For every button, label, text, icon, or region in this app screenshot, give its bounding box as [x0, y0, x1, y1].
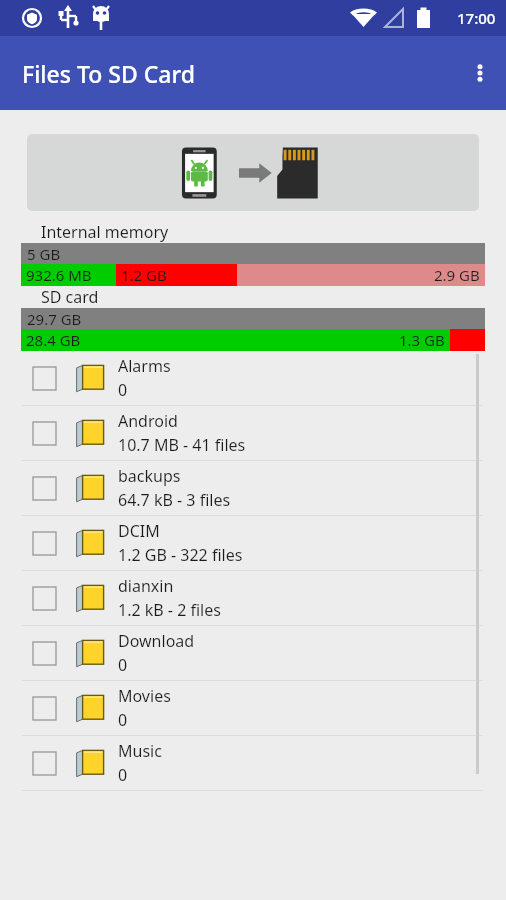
staticText: 1.2 kB - 2 files — [118, 599, 221, 621]
other: Move files to SD card — [175, 144, 331, 202]
button[interactable]: Download — [0, 626, 506, 680]
staticText: 1.2 GB — [121, 265, 167, 285]
staticText: 1.2 GB - 322 files — [118, 544, 243, 566]
staticText: 0 — [118, 764, 128, 786]
staticText: Alarms — [118, 355, 171, 377]
staticText: SD card — [41, 286, 99, 308]
staticText: 28.4 GB — [26, 330, 81, 350]
button[interactable]: DCIM — [0, 516, 506, 570]
staticText: backups — [118, 465, 181, 487]
button[interactable]: Android — [0, 406, 506, 460]
staticText: 932.6 MB — [26, 265, 92, 285]
staticText: 1.3 GB — [399, 330, 445, 350]
staticText: 0 — [118, 379, 128, 401]
staticText: 0 — [118, 654, 128, 676]
staticText: dianxin — [118, 575, 174, 597]
button[interactable]: Alarms — [0, 351, 506, 405]
staticText: 10.7 MB - 41 files — [118, 434, 246, 456]
staticText: Android — [118, 410, 178, 432]
button[interactable]: Music — [0, 736, 506, 790]
staticText: 29.7 GB — [27, 309, 82, 329]
staticText: 0 — [118, 709, 128, 731]
button[interactable]: backups — [0, 461, 506, 515]
staticText: 17:00 — [457, 8, 496, 28]
button[interactable]: Movies — [0, 681, 506, 735]
staticText: Movies — [118, 685, 171, 707]
button[interactable]: dianxin — [0, 571, 506, 625]
staticText: Music — [118, 740, 162, 762]
staticText: Files To SD Card — [22, 58, 196, 89]
staticText: 64.7 kB - 3 files — [118, 489, 231, 511]
button[interactable]: Move files to SD card — [27, 134, 479, 211]
staticText: Internal memory — [41, 221, 169, 243]
staticText: DCIM — [118, 520, 160, 542]
staticText: 2.9 GB — [434, 265, 480, 285]
button[interactable]: More options — [454, 47, 506, 99]
staticText: Download — [118, 630, 195, 652]
staticText: 5 GB — [27, 244, 61, 264]
